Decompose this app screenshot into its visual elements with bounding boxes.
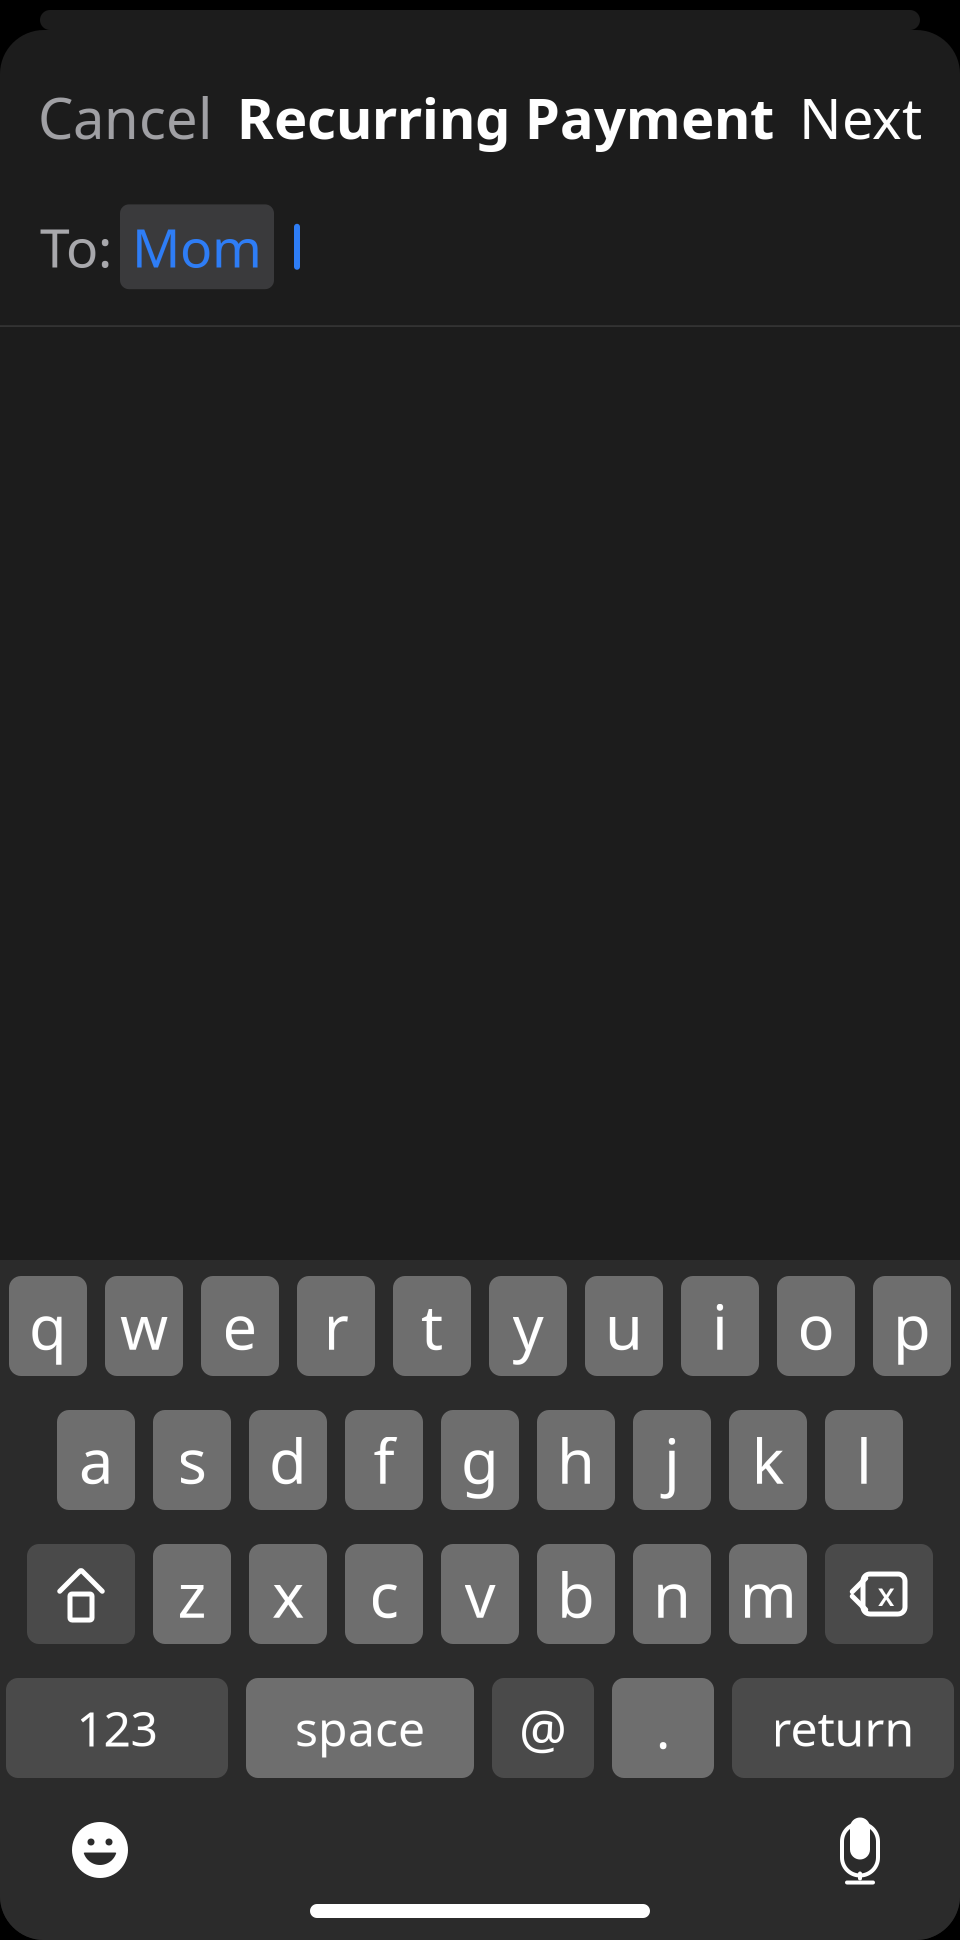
staticText: m (739, 1553, 796, 1635)
button[interactable]: l (825, 1410, 903, 1510)
staticText: @ (519, 1693, 567, 1763)
staticText: o (797, 1285, 834, 1367)
button[interactable]: Shift (27, 1544, 135, 1644)
button[interactable]: p (873, 1276, 951, 1376)
button[interactable]: f (345, 1410, 423, 1510)
staticText: u (605, 1285, 643, 1367)
staticText: Mom (132, 211, 262, 282)
button[interactable]: o (777, 1276, 855, 1376)
staticText: v (464, 1553, 495, 1635)
staticText: r (323, 1285, 348, 1367)
button[interactable]: b (537, 1544, 615, 1644)
staticText: return (771, 1696, 914, 1760)
staticText: j (664, 1419, 680, 1501)
staticText: l (856, 1419, 872, 1501)
button[interactable]: Dictation (810, 1800, 910, 1900)
button[interactable]: e (201, 1276, 279, 1376)
staticText: q (29, 1285, 67, 1367)
staticText: f (373, 1419, 394, 1501)
staticText: 123 (76, 1696, 157, 1760)
button[interactable]: m (729, 1544, 807, 1644)
button[interactable]: n (633, 1544, 711, 1644)
button[interactable]: z (153, 1544, 231, 1644)
staticText: s (177, 1419, 206, 1501)
button[interactable]: Delete (825, 1544, 933, 1644)
button[interactable]: d (249, 1410, 327, 1510)
staticText: g (461, 1419, 499, 1501)
button[interactable]: q (9, 1276, 87, 1376)
button[interactable]: y (489, 1276, 567, 1376)
button[interactable]: u (585, 1276, 663, 1376)
button[interactable]: s (153, 1410, 231, 1510)
button[interactable]: @ (492, 1678, 594, 1778)
button[interactable]: t (393, 1276, 471, 1376)
button[interactable]: return (732, 1678, 954, 1778)
staticText: i (712, 1285, 728, 1367)
staticText: Cancel (38, 80, 212, 154)
button[interactable]: x (249, 1544, 327, 1644)
button[interactable]: Mom (120, 204, 274, 289)
staticText: a (79, 1419, 113, 1501)
staticText: . (656, 1693, 670, 1763)
button[interactable]: r (297, 1276, 375, 1376)
staticText: b (557, 1553, 595, 1635)
button[interactable]: c (345, 1544, 423, 1644)
staticText: h (557, 1419, 595, 1501)
staticText: d (269, 1419, 307, 1501)
staticText: p (893, 1285, 931, 1367)
staticText: t (421, 1285, 443, 1367)
button[interactable]: space (246, 1678, 474, 1778)
staticText: n (653, 1553, 691, 1635)
staticText: space (295, 1696, 425, 1760)
button[interactable]: h (537, 1410, 615, 1510)
button[interactable]: i (681, 1276, 759, 1376)
button[interactable]: a (57, 1410, 135, 1510)
staticText: Recurring Payment (237, 80, 774, 154)
button[interactable]: Emoji (50, 1800, 150, 1900)
staticText: x (877, 1573, 894, 1615)
button[interactable]: w (105, 1276, 183, 1376)
button[interactable]: k (729, 1410, 807, 1510)
button[interactable]: v (441, 1544, 519, 1644)
button[interactable]: j (633, 1410, 711, 1510)
staticText: e (222, 1285, 257, 1367)
button[interactable]: Cancel (24, 70, 226, 164)
staticText: x (272, 1553, 304, 1635)
button[interactable]: . (612, 1678, 714, 1778)
staticText: c (369, 1553, 398, 1635)
staticText: Next (799, 80, 922, 154)
button[interactable]: g (441, 1410, 519, 1510)
staticText: To: (40, 211, 112, 282)
staticText: z (177, 1553, 206, 1635)
staticText: k (751, 1419, 784, 1501)
button[interactable]: Next (785, 70, 936, 164)
button[interactable]: 123 (6, 1678, 228, 1778)
staticText: y (512, 1285, 543, 1367)
staticText: w (120, 1285, 168, 1367)
